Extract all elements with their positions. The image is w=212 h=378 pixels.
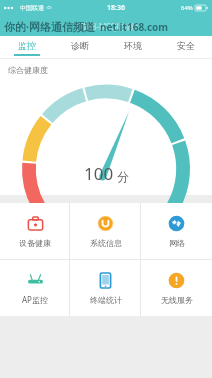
staticText: 64% — [181, 4, 193, 12]
staticText: 诊断 — [71, 40, 89, 51]
button[interactable]: 监控 — [0, 36, 53, 58]
button[interactable]: 终端统计 — [70, 260, 141, 316]
button[interactable]: 设备健康 — [0, 203, 70, 259]
staticText: 监控 — [18, 40, 36, 51]
staticText: 100 — [84, 162, 114, 185]
button[interactable]: AP监控 — [0, 260, 70, 316]
button[interactable]: 无线服务 — [141, 260, 212, 316]
staticText: 无线服务 — [161, 295, 193, 305]
staticText: AP监控 — [22, 294, 48, 305]
staticText: 终端统计 — [90, 295, 122, 305]
button[interactable]: 系统信息 — [70, 203, 141, 259]
staticText: 设备健康 — [19, 238, 51, 248]
staticText: 你的·网络通信频道 — [4, 19, 96, 34]
staticText: 18:36 — [107, 3, 125, 13]
staticText: 中国联通 — [20, 4, 44, 12]
button[interactable]: 网络 — [141, 203, 212, 259]
staticText: 综合健康度 — [8, 65, 48, 75]
button[interactable]: 安全 — [159, 36, 212, 58]
staticText: 安全 — [177, 40, 195, 51]
button[interactable]: 诊断 — [53, 36, 106, 58]
staticText: IT168-MSQ(在线) — [75, 21, 138, 32]
staticText: 环境 — [124, 40, 142, 51]
staticText: 网络 — [169, 238, 185, 248]
staticText: net.it168.com — [100, 20, 169, 34]
staticText: 分 — [117, 169, 129, 184]
button[interactable]: 环境 — [106, 36, 159, 58]
staticText: 系统信息 — [90, 238, 122, 248]
